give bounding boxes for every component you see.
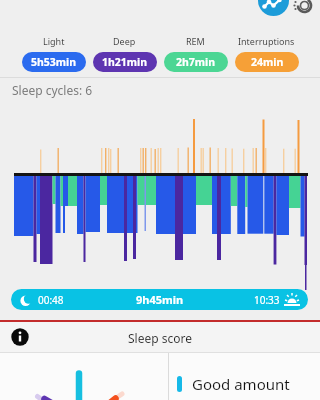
button[interactable]: [0, 353, 167, 400]
button[interactable]: 1h21min: [93, 52, 157, 72]
button[interactable]: [258, 0, 289, 16]
staticText: REM: [186, 35, 205, 47]
button[interactable]: Good amount: [177, 374, 290, 394]
staticText: Good amount: [192, 374, 290, 394]
button[interactable]: [293, 0, 313, 20]
staticText: Sleep cycles: 6: [12, 82, 93, 98]
staticText: 9h45min: [136, 292, 184, 307]
staticText: Deep: [113, 35, 136, 47]
staticText: 2h7min: [176, 55, 216, 69]
staticText: Interruptions: [238, 35, 295, 47]
button[interactable]: 00:48: [11, 289, 308, 310]
button[interactable]: Sleep score: [0, 322, 320, 353]
button[interactable]: 5h53min: [22, 52, 86, 72]
staticText: Light: [43, 35, 65, 47]
button[interactable]: 24min: [235, 52, 299, 72]
button[interactable]: [11, 328, 29, 346]
staticText: 24min: [251, 55, 284, 69]
staticText: 00:48: [38, 293, 64, 307]
button[interactable]: 2h7min: [164, 52, 228, 72]
staticText: 10:33: [254, 293, 280, 307]
staticText: 5h53min: [31, 55, 77, 69]
staticText: 1h21min: [102, 55, 148, 69]
staticText: Sleep score: [128, 330, 192, 346]
